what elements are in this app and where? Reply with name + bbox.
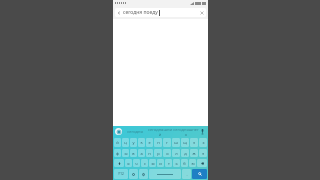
button[interactable]: и	[157, 159, 164, 167]
staticText: а	[140, 151, 143, 156]
button[interactable]: сегодняшнего	[173, 126, 199, 137]
button[interactable]: б	[181, 159, 188, 167]
other: Back	[117, 11, 121, 15]
staticText: ф	[116, 151, 119, 156]
staticText: л	[175, 151, 178, 156]
staticText: й	[116, 140, 119, 145]
other: Clear	[200, 11, 204, 15]
staticText: н	[157, 140, 160, 145]
staticText: я	[127, 161, 130, 166]
staticText: п	[148, 151, 151, 156]
button[interactable]: п	[146, 149, 153, 157]
button[interactable]: е	[146, 138, 153, 147]
button[interactable]: р	[154, 149, 162, 157]
staticText: ?!12	[118, 172, 124, 176]
button[interactable]: ?!12	[114, 169, 128, 179]
staticText: о	[166, 151, 169, 156]
staticText: ь	[175, 161, 178, 166]
staticText: у	[132, 140, 135, 145]
staticText: э	[202, 151, 204, 156]
staticText: сегодняшнего	[173, 127, 199, 137]
button[interactable]: Clipboard	[139, 169, 148, 179]
button[interactable]: а	[138, 149, 145, 157]
staticText: е	[148, 140, 151, 145]
button[interactable]: ш	[172, 138, 180, 147]
staticText: сегодня поеду	[123, 9, 158, 16]
staticText: х	[202, 140, 205, 145]
button[interactable]: у	[130, 138, 137, 147]
button[interactable]: э	[199, 149, 207, 157]
staticText: щ	[183, 140, 187, 145]
staticText: сегодня	[127, 129, 143, 134]
staticText: ц	[124, 140, 127, 145]
staticText: с	[144, 161, 146, 166]
button[interactable]: сегодня	[122, 126, 147, 137]
button[interactable]: л	[172, 149, 180, 157]
staticText: г	[166, 140, 168, 145]
staticText: сегодняшний	[147, 127, 173, 137]
button[interactable]: ф	[114, 149, 121, 157]
button[interactable]: ц	[122, 138, 129, 147]
staticText: д	[184, 151, 187, 156]
button[interactable]: .	[182, 169, 191, 179]
staticText: б	[183, 161, 186, 166]
button[interactable]: ю	[189, 159, 196, 167]
staticText: р	[157, 151, 160, 156]
staticText: т	[168, 161, 170, 166]
staticText: м	[151, 161, 155, 166]
button[interactable]: щ	[181, 138, 189, 147]
staticText: ч	[135, 161, 138, 166]
button[interactable]: г	[163, 138, 171, 147]
button[interactable]: ч	[133, 159, 140, 167]
button[interactable]: Shift	[114, 159, 124, 167]
button[interactable]: Search	[192, 169, 207, 179]
button[interactable]: Backspace	[197, 159, 207, 167]
button[interactable]: ь	[173, 159, 180, 167]
button[interactable]: Back	[115, 8, 206, 17]
staticText: и	[159, 161, 162, 166]
button[interactable]: сегодняшний	[147, 126, 173, 137]
button[interactable]: о	[163, 149, 171, 157]
button[interactable]: я	[125, 159, 132, 167]
staticText: к	[140, 140, 143, 145]
button[interactable]: Voice input	[199, 128, 206, 135]
button[interactable]: Emoji	[129, 169, 138, 179]
staticText: .	[186, 172, 188, 177]
staticText: з	[193, 140, 195, 145]
button[interactable]: к	[138, 138, 145, 147]
button[interactable]: д	[181, 149, 189, 157]
button[interactable]: в	[130, 149, 137, 157]
staticText: в	[132, 151, 135, 156]
staticText: ш	[174, 140, 178, 145]
button[interactable]: з	[190, 138, 198, 147]
button[interactable]: Space	[149, 169, 181, 179]
button[interactable]: с	[141, 159, 148, 167]
button[interactable]: т	[165, 159, 172, 167]
button[interactable]: ы	[122, 149, 129, 157]
button[interactable]: Keyboard settings	[115, 128, 122, 135]
staticText: ы	[124, 151, 128, 156]
button[interactable]: ж	[190, 149, 198, 157]
button[interactable]: х	[199, 138, 207, 147]
staticText: ж	[192, 151, 196, 156]
staticText: ю	[191, 161, 195, 166]
button[interactable]: м	[149, 159, 156, 167]
button[interactable]: й	[114, 138, 121, 147]
button[interactable]: н	[154, 138, 162, 147]
